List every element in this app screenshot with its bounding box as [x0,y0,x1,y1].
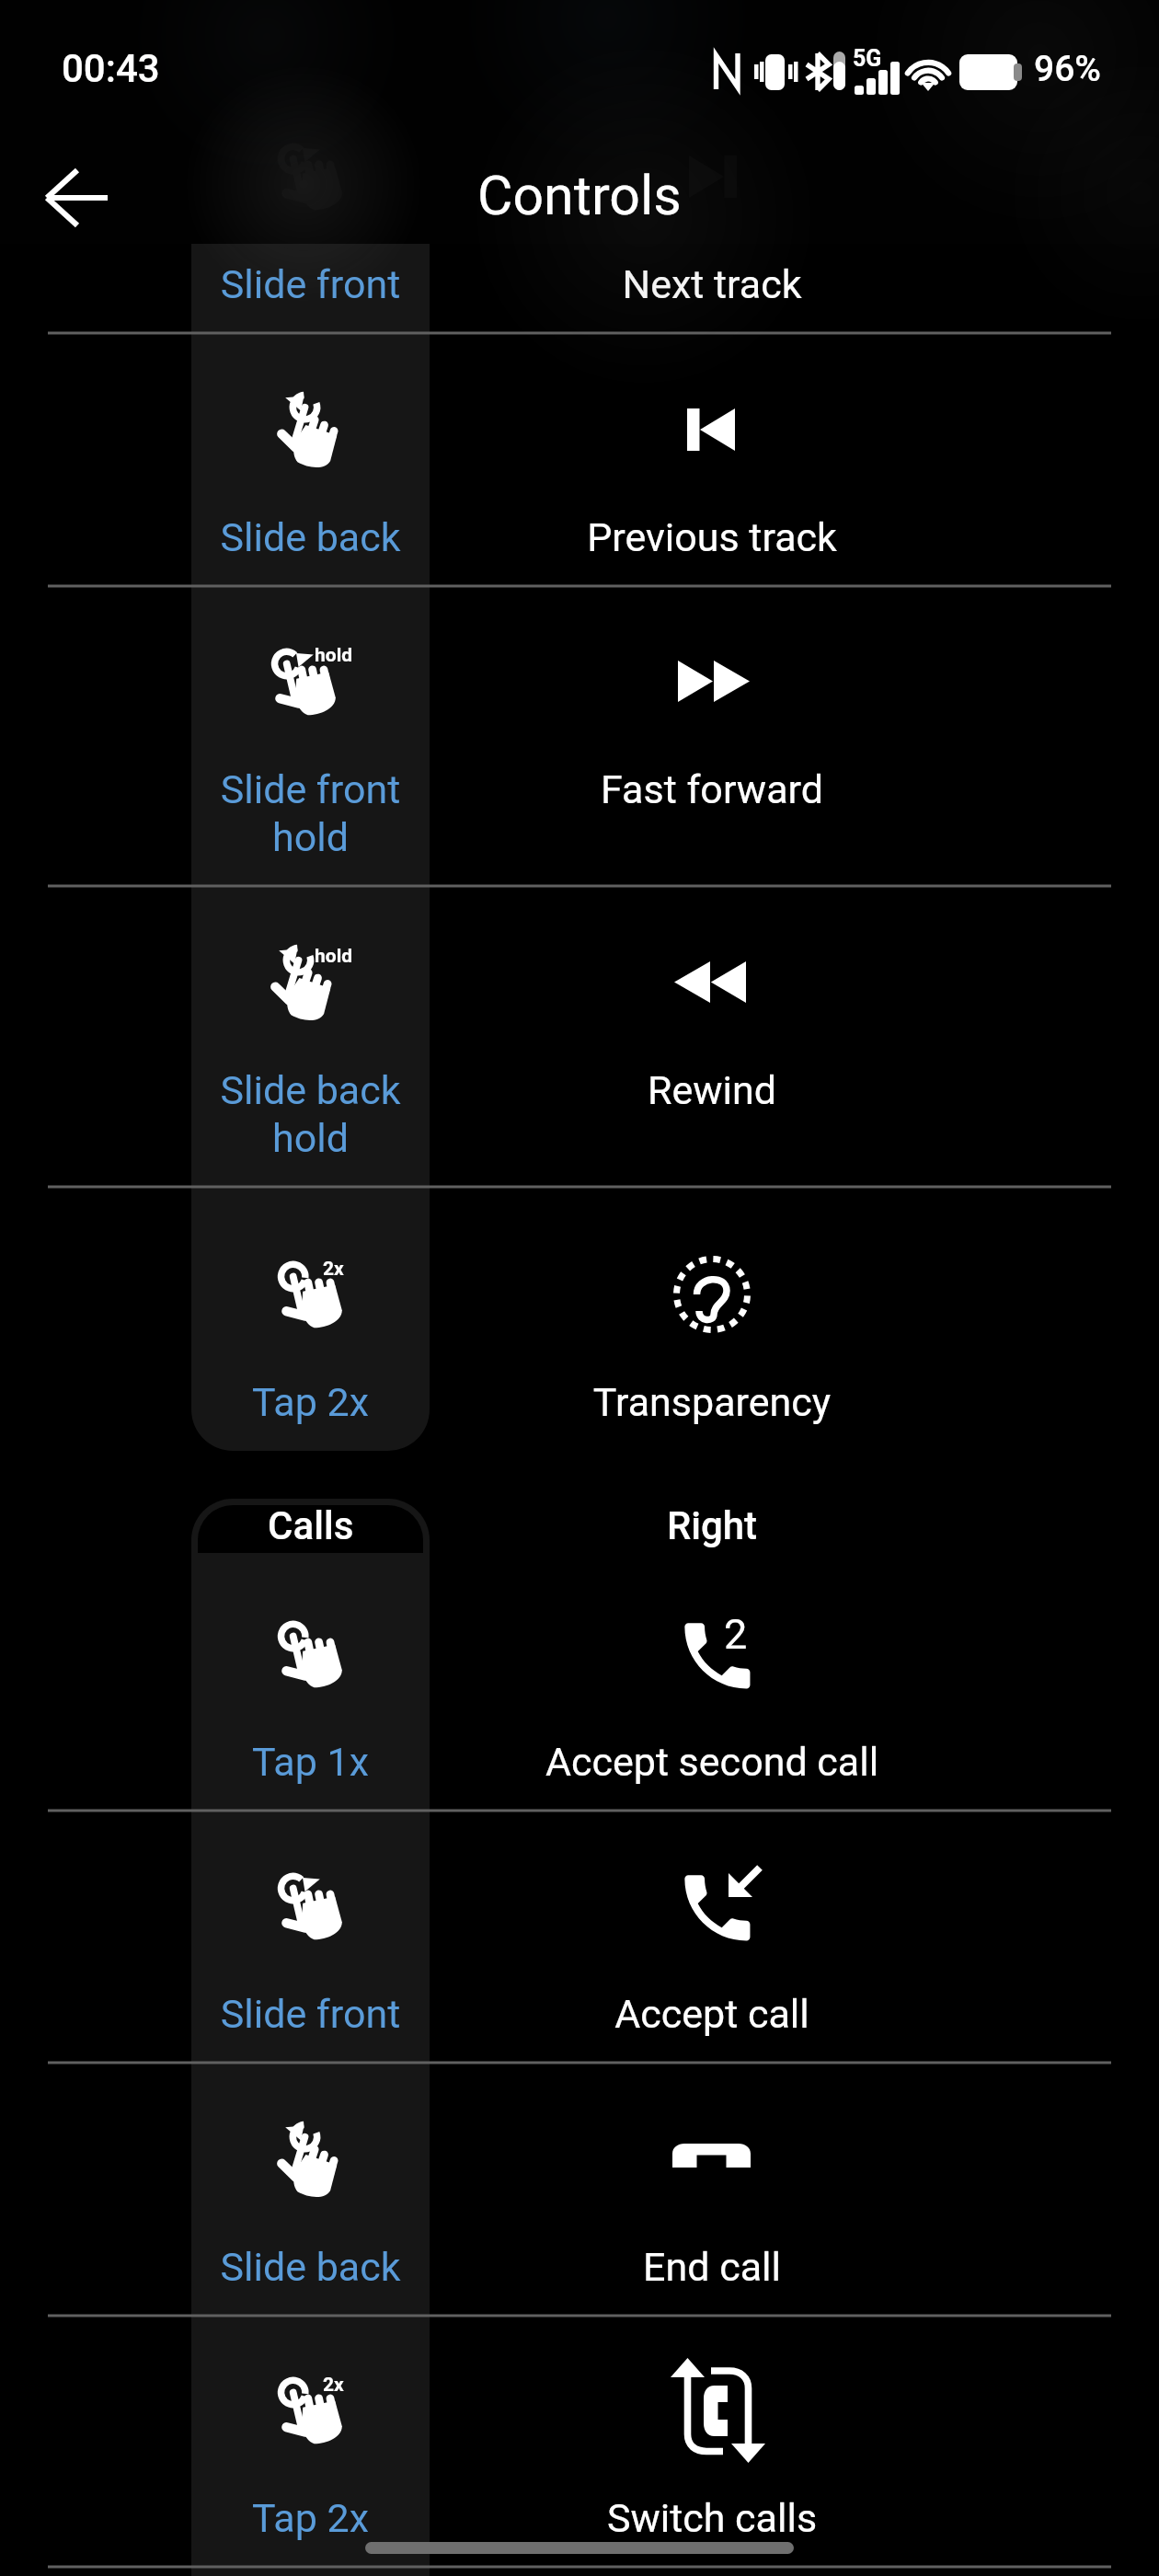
staticText: Slide back [191,2244,430,2290]
staticText: 2x [323,1258,344,1281]
button[interactable]: Slide back [191,2063,430,2316]
button[interactable]: Slide front [191,80,430,333]
button[interactable]: Fast forward [430,586,994,886]
staticText: hold [315,644,353,667]
staticText: Rewind [430,1067,994,1113]
button[interactable]: Back [36,157,117,238]
button[interactable]: End call [430,2063,994,2316]
staticText: Accept second call [430,1739,994,1785]
button[interactable]: 2x [191,2316,430,2567]
button[interactable]: Rewind [430,886,994,1187]
staticText: Right [667,1503,758,1548]
staticText: Tap 1x [191,1739,430,1785]
staticText: Slide front [191,1991,430,2037]
staticText: hold [315,945,353,968]
staticText: Slide back hold [191,1067,430,1162]
staticText: Calls [268,1503,354,1548]
staticText: Tap 2x [191,1379,430,1425]
staticText: Transparency [430,1379,994,1425]
button[interactable]: Transparency [430,1187,994,1451]
button[interactable]: 2 [430,1553,994,1811]
staticText: Controls [477,164,682,227]
button[interactable]: hold [191,886,430,1187]
staticText: Slide front hold [191,766,430,861]
staticText: 2x [323,2374,344,2397]
staticText: Switch calls [430,2495,994,2541]
staticText: 5G [853,45,882,72]
staticText: Tap 2x [191,2495,430,2541]
staticText: 2 [724,1610,748,1659]
button[interactable]: Slide front [191,1811,430,2063]
button[interactable]: Previous track [430,333,994,586]
button[interactable]: hold [191,586,430,886]
staticText: Slide front [191,261,430,307]
staticText: Slide back [191,514,430,560]
button[interactable]: Switch calls [430,2316,994,2567]
staticText: End call [430,2244,994,2290]
button[interactable]: Next track [430,80,994,333]
staticText: Next track [430,261,994,307]
button[interactable]: Slide back [191,333,430,586]
button[interactable]: Accept call [430,1811,994,2063]
button[interactable]: Tap 1x [191,1553,430,1811]
staticText: 00:43 [62,46,160,91]
button[interactable]: 2x [191,1187,430,1451]
staticText: Accept call [430,1991,994,2037]
staticText: Previous track [430,514,994,560]
staticText: Fast forward [430,766,994,812]
staticText: 96% [1034,48,1101,90]
